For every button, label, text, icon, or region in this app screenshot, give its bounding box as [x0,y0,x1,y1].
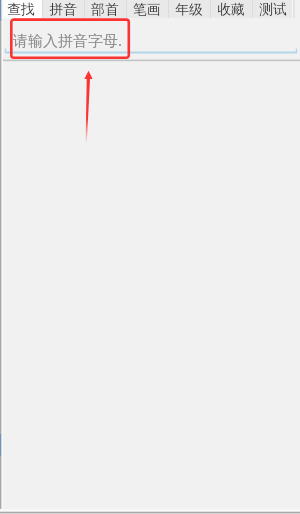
button[interactable]: 年级 [168,0,210,18]
button[interactable]: 部首 [84,0,126,18]
staticText: 笔画 [133,1,161,18]
button[interactable]: 查找 [0,0,42,18]
staticText: 拼音 [49,1,77,18]
staticText: 测试 [259,1,287,18]
staticText: 部首 [91,1,119,18]
staticText: 年级 [175,1,203,18]
button[interactable]: 拼音 [42,0,84,18]
staticText: 查找 [7,1,35,18]
button[interactable]: 收藏 [210,0,252,18]
button[interactable] [294,0,300,18]
button[interactable]: 笔画 [126,0,168,18]
staticText: 收藏 [217,1,245,18]
staticText: 请输入拼音字母. [13,30,123,50]
button[interactable]: 测试 [252,0,294,18]
